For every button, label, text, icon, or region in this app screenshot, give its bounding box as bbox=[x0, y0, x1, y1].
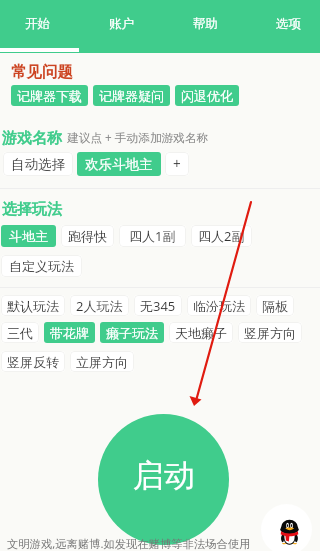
staticText: 带花牌 bbox=[50, 325, 89, 341]
button[interactable]: 癞子玩法 bbox=[100, 322, 164, 343]
staticText: 账户 bbox=[109, 16, 134, 32]
staticText: 2人玩法 bbox=[76, 297, 123, 315]
button[interactable]: 自动选择 bbox=[3, 152, 73, 176]
button[interactable]: + bbox=[165, 152, 189, 176]
button[interactable]: 无345 bbox=[134, 295, 182, 316]
staticText: 竖屏方向 bbox=[244, 325, 296, 341]
staticText: 默认玩法 bbox=[7, 298, 59, 314]
button[interactable]: 竖屏反转 bbox=[1, 351, 65, 372]
button[interactable]: 默认玩法 bbox=[1, 295, 65, 316]
staticText: 记牌器下载 bbox=[17, 88, 82, 104]
button[interactable]: 隔板 bbox=[256, 295, 294, 316]
button[interactable]: 天地癞子 bbox=[169, 322, 233, 343]
staticText: 立屏方向 bbox=[76, 354, 128, 370]
button[interactable]: 斗地主 bbox=[1, 225, 56, 247]
staticText: 选项 bbox=[276, 16, 301, 32]
button[interactable]: 账户 bbox=[81, 0, 161, 48]
staticText: 癞子玩法 bbox=[106, 325, 158, 341]
staticText: + bbox=[173, 155, 181, 173]
staticText: 欢乐斗地主 bbox=[85, 156, 153, 173]
button[interactable]: 开始 bbox=[0, 0, 77, 48]
staticText: 无345 bbox=[140, 297, 176, 315]
button[interactable]: 竖屏方向 bbox=[238, 322, 302, 343]
staticText: 三代 bbox=[7, 325, 33, 341]
staticText: 帮助 bbox=[193, 16, 218, 32]
staticText: 隔板 bbox=[262, 298, 288, 314]
staticText: 四人2副 bbox=[198, 227, 245, 245]
staticText: 开始 bbox=[25, 16, 50, 32]
button[interactable]: 帮助 bbox=[165, 0, 245, 48]
staticText: 四人1副 bbox=[129, 227, 176, 245]
button[interactable]: 四人1副 bbox=[119, 225, 186, 247]
button[interactable]: 跑得快 bbox=[61, 225, 114, 247]
staticText: 天地癞子 bbox=[175, 325, 227, 341]
staticText: 常见问题 bbox=[11, 62, 73, 82]
staticText: 斗地主 bbox=[9, 228, 48, 244]
button[interactable]: QQ 客服 bbox=[261, 504, 312, 551]
button[interactable]: 三代 bbox=[1, 322, 39, 343]
staticText: 跑得快 bbox=[68, 228, 107, 244]
staticText: 游戏名称 bbox=[2, 129, 62, 148]
button[interactable]: 选项 bbox=[248, 0, 320, 48]
button[interactable]: 记牌器疑问 bbox=[93, 85, 170, 106]
staticText: 建议点 + 手动添加游戏名称 bbox=[67, 129, 209, 145]
button[interactable]: 启动 bbox=[98, 414, 229, 545]
button[interactable]: 2人玩法 bbox=[70, 295, 129, 316]
staticText: 自动选择 bbox=[11, 156, 65, 173]
button[interactable]: 临汾玩法 bbox=[187, 295, 251, 316]
staticText: 竖屏反转 bbox=[7, 354, 59, 370]
button[interactable]: 自定义玩法 bbox=[1, 255, 82, 277]
staticText: 启动 bbox=[133, 456, 195, 495]
staticText: 闪退优化 bbox=[181, 88, 233, 104]
staticText: 选择玩法 bbox=[2, 200, 62, 219]
staticText: 记牌器疑问 bbox=[99, 88, 164, 104]
button[interactable]: 带花牌 bbox=[44, 322, 95, 343]
button[interactable]: 欢乐斗地主 bbox=[77, 152, 161, 176]
button[interactable]: 四人2副 bbox=[191, 225, 252, 247]
button[interactable]: 记牌器下载 bbox=[11, 85, 88, 106]
button[interactable]: 立屏方向 bbox=[70, 351, 134, 372]
button[interactable]: 闪退优化 bbox=[175, 85, 239, 106]
staticText: 临汾玩法 bbox=[193, 298, 245, 314]
staticText: 文明游戏,远离赌博.如发现在赌博等非法场合使用 bbox=[7, 536, 251, 551]
staticText: 自定义玩法 bbox=[9, 258, 74, 274]
